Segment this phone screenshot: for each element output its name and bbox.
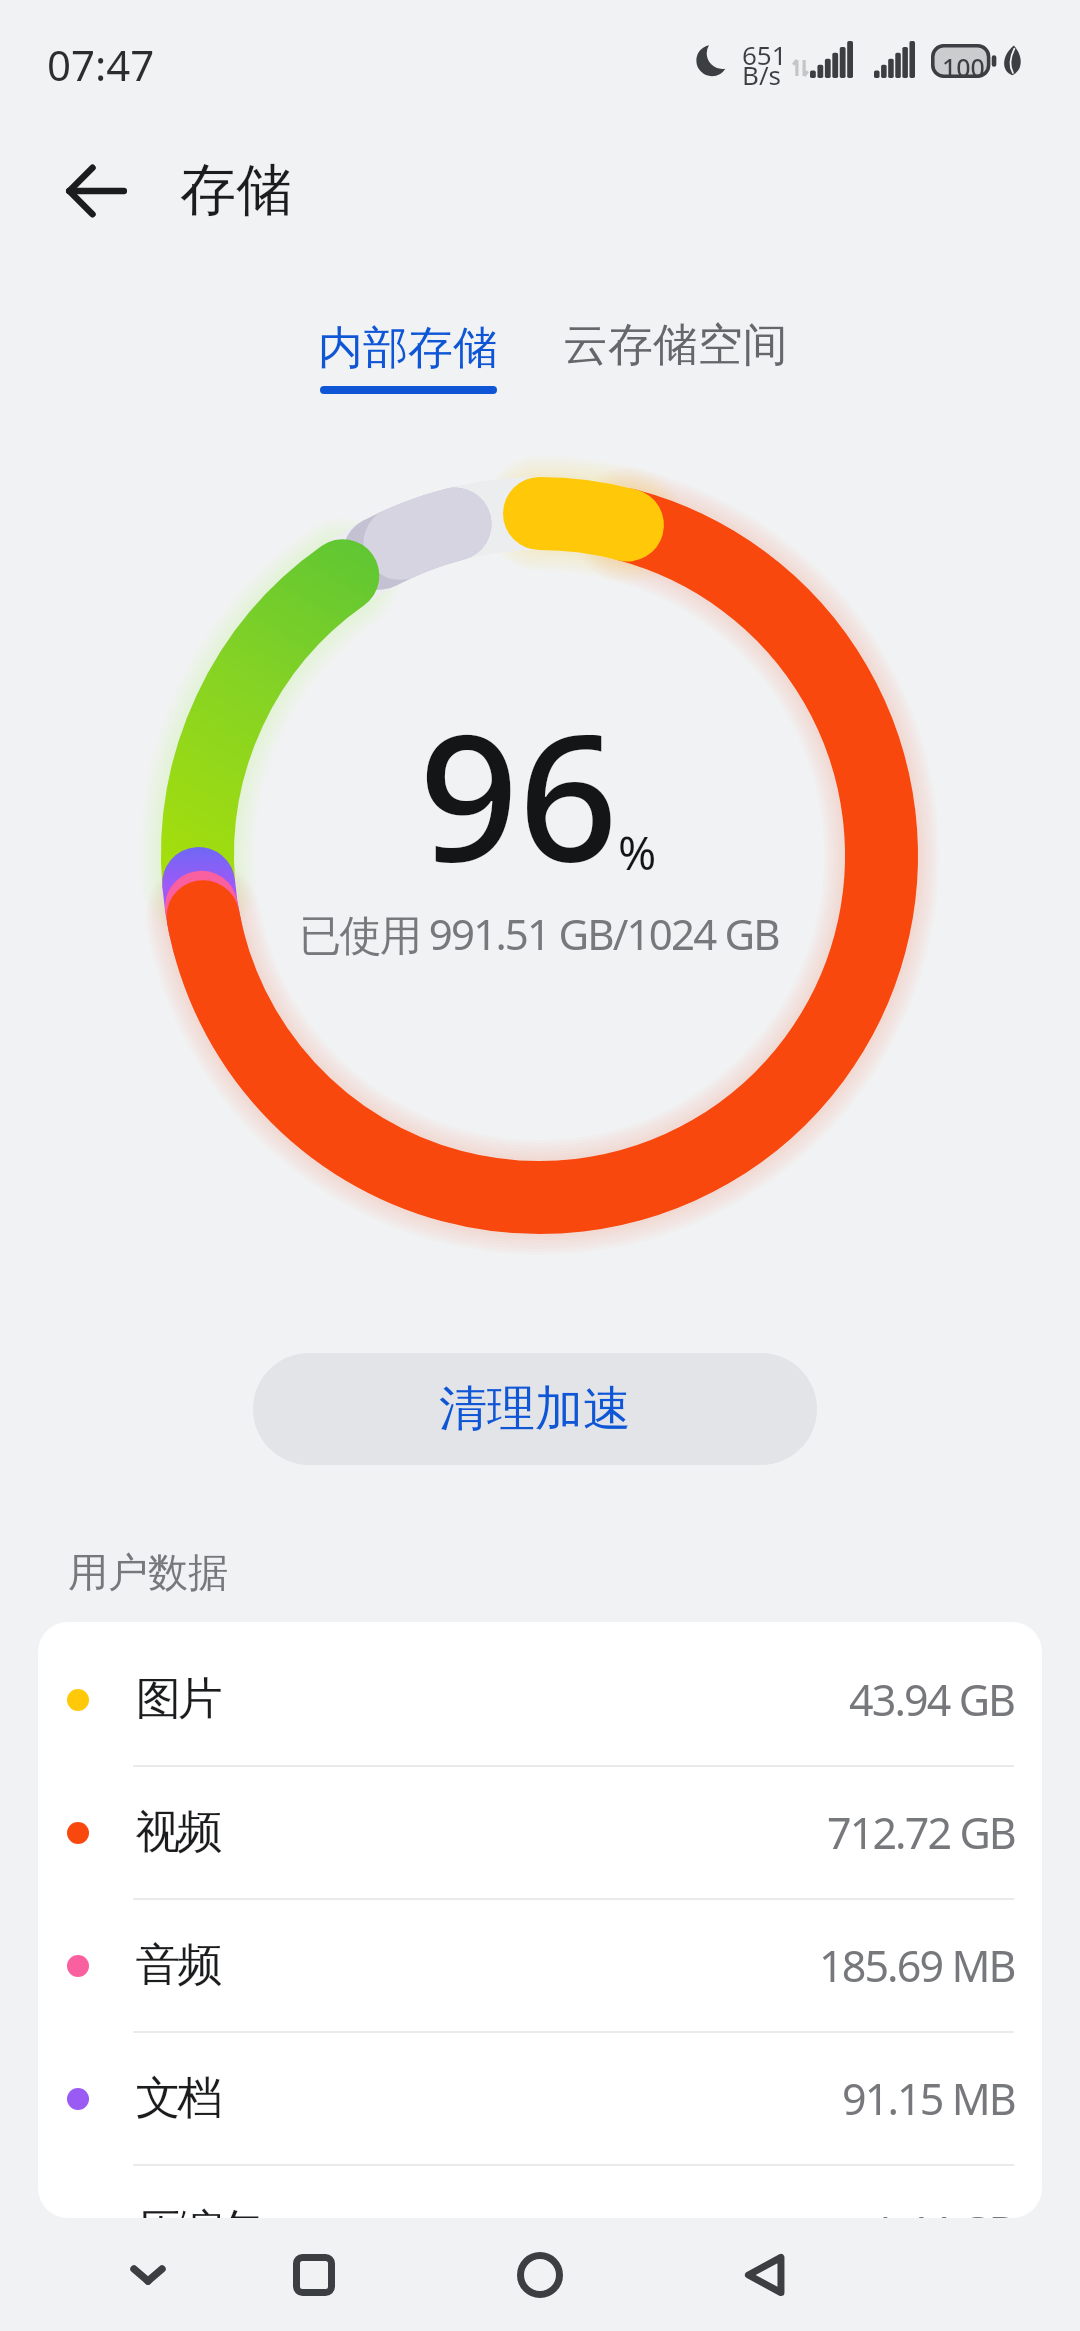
- button[interactable]: Back: [58, 153, 134, 229]
- button[interactable]: Back: [696, 2237, 836, 2313]
- staticText: 07:47: [47, 36, 155, 93]
- button[interactable]: 视频: [38, 1767, 1042, 1898]
- staticText: 文档: [137, 2070, 221, 2127]
- staticText: 43.94 GB: [849, 1670, 1015, 1729]
- button[interactable]: 音频: [38, 1900, 1042, 2031]
- staticText: 185.69 MB: [819, 1936, 1015, 1995]
- staticText: 图片: [137, 1671, 221, 1728]
- staticText: 云存储空间: [563, 317, 788, 374]
- button[interactable]: 清理加速: [253, 1353, 817, 1465]
- staticText: 压缩包: [137, 2203, 263, 2218]
- button[interactable]: Hide keyboard: [78, 2237, 218, 2313]
- staticText: B/s: [742, 57, 782, 92]
- button[interactable]: 云存储空间: [533, 293, 818, 398]
- button[interactable]: 图片: [38, 1634, 1042, 1765]
- button[interactable]: Recents: [244, 2237, 384, 2313]
- staticText: 存储: [180, 155, 292, 226]
- button[interactable]: 压缩包: [38, 2166, 1042, 2218]
- staticText: 651: [742, 37, 787, 72]
- staticText: 已使用 991.51 GB/1024 GB: [299, 905, 779, 962]
- staticText: %: [618, 821, 657, 884]
- staticText: 清理加速: [439, 1379, 631, 1439]
- staticText: 712.72 GB: [827, 1803, 1015, 1862]
- staticText: 100: [942, 50, 985, 84]
- button[interactable]: Home: [470, 2237, 610, 2313]
- staticText: 1.44 GB: [872, 2202, 1015, 2218]
- staticText: 用户数据: [68, 1547, 228, 1597]
- staticText: 音频: [137, 1937, 221, 1994]
- button[interactable]: 内部存储: [288, 296, 528, 418]
- button[interactable]: 文档: [38, 2033, 1042, 2164]
- staticText: 96: [419, 675, 619, 912]
- staticText: 内部存储: [318, 320, 498, 377]
- staticText: 视频: [137, 1804, 221, 1861]
- staticText: 91.15 MB: [842, 2069, 1015, 2128]
